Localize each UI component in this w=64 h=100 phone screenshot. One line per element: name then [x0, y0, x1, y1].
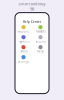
button[interactable]: Payments [15, 34, 32, 44]
button[interactable]: Offers [15, 44, 32, 54]
button[interactable]: Help [32, 44, 49, 54]
staticText: smart and easy [18, 1, 45, 6]
staticText: Account [18, 30, 29, 33]
staticText: Help Center [23, 20, 41, 24]
staticText: Offers [19, 50, 27, 53]
button[interactable]: Rewards [32, 24, 49, 34]
staticText: Settings [18, 60, 29, 63]
staticText: Rewards [35, 30, 45, 33]
button[interactable]: Security [32, 34, 49, 44]
staticText: Help [37, 50, 44, 53]
button[interactable]: Settings [15, 54, 32, 64]
staticText: Security [35, 40, 45, 43]
staticText: Payments [17, 40, 29, 43]
staticText: 98 [30, 6, 34, 12]
button[interactable]: Account [15, 24, 32, 34]
